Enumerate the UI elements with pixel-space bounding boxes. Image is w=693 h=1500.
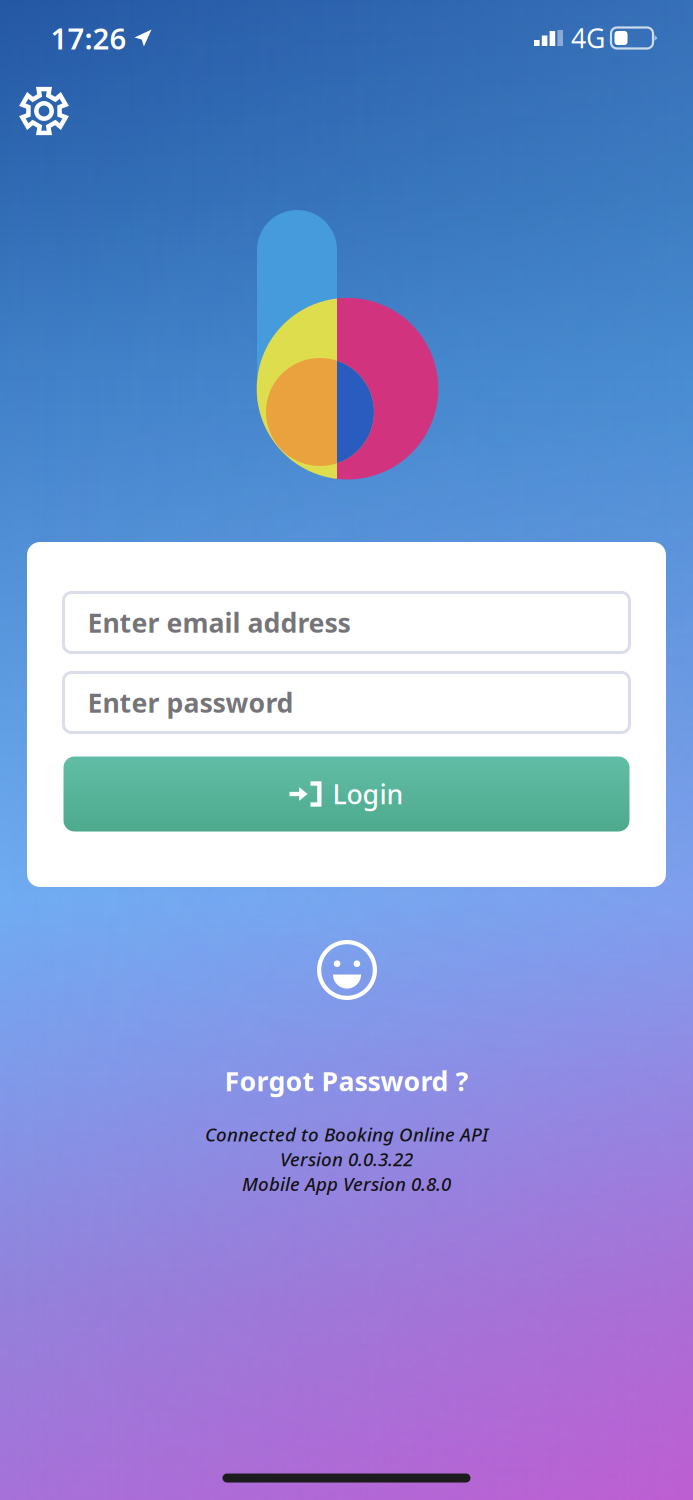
staticText: 17:26 (50, 18, 126, 57)
staticText: 4G (571, 20, 605, 56)
staticText: Enter password (87, 685, 293, 720)
staticText: Login (332, 776, 403, 812)
button[interactable]: Login (63, 756, 629, 831)
staticText: Mobile App Version 0.8.0 (242, 1171, 451, 1196)
staticText: Forgot Password ? (224, 1063, 468, 1099)
button[interactable]: Enter password (63, 672, 629, 732)
button[interactable]: Settings (10, 77, 78, 145)
staticText: Enter email address (87, 605, 350, 640)
button[interactable]: Enter email address (63, 592, 629, 652)
staticText: Connected to Booking Online API (205, 1122, 488, 1147)
button[interactable]: Forgot Password ? (210, 1055, 482, 1107)
staticText: Version 0.0.3.22 (280, 1147, 413, 1171)
